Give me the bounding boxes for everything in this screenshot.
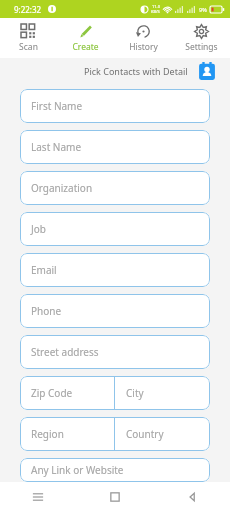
button[interactable]: Settings [172, 18, 230, 58]
staticText: History [129, 41, 158, 53]
staticText: Street address [31, 345, 99, 359]
staticText: Country [126, 427, 164, 441]
button[interactable]: Street address [20, 335, 210, 369]
button[interactable]: Any Link or Website [20, 458, 210, 482]
button[interactable]: Back [153, 482, 230, 512]
staticText: Any Link or Website [31, 463, 124, 477]
button[interactable]: Create [57, 18, 114, 58]
button[interactable]: Recents [0, 482, 76, 512]
button[interactable]: Zip Code [20, 376, 114, 410]
button[interactable]: Country [115, 417, 210, 451]
staticText: Job [31, 222, 46, 236]
staticText: 11.0 [152, 4, 160, 9]
button[interactable]: Job [20, 212, 210, 246]
staticText: Settings [185, 41, 218, 53]
staticText: Email [31, 263, 57, 277]
button[interactable]: Scan [0, 18, 57, 58]
button[interactable]: Home [76, 482, 153, 512]
staticText: Create [72, 41, 99, 53]
button[interactable]: Phone [20, 294, 210, 328]
button[interactable]: Organization [20, 171, 210, 205]
button[interactable]: Pick contacts with detail [198, 62, 216, 80]
staticText: Last Name [31, 140, 82, 154]
button[interactable]: History [114, 18, 172, 58]
staticText: Phone [31, 304, 62, 318]
staticText: 9% [199, 6, 207, 13]
button[interactable]: City [115, 376, 210, 410]
staticText: Zip Code [31, 386, 73, 400]
staticText: Scan [19, 41, 38, 53]
staticText: First Name [31, 99, 83, 113]
staticText: City [126, 386, 144, 400]
staticText: Organization [31, 181, 93, 195]
button[interactable]: First Name [20, 89, 210, 123]
staticText: Region [31, 427, 64, 441]
button[interactable]: Last Name [20, 130, 210, 164]
staticText: 9:22:32 [14, 4, 42, 15]
staticText: Pick Contacts with Detail [84, 65, 188, 77]
button[interactable]: Email [20, 253, 210, 287]
staticText: KB/S [151, 9, 160, 14]
button[interactable]: Region [20, 417, 114, 451]
